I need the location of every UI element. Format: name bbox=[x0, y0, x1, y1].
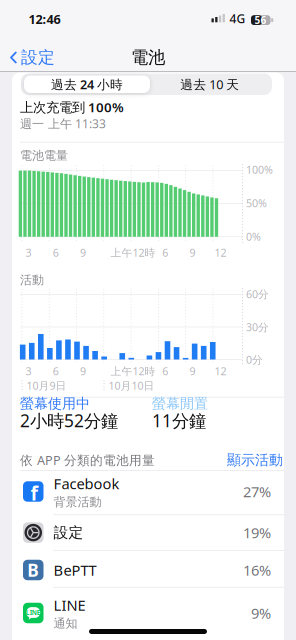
staticText: Facebook bbox=[53, 473, 119, 493]
staticText: 6 bbox=[53, 364, 59, 378]
staticText: 12 bbox=[214, 245, 226, 260]
button[interactable]: 過去 24 小時 bbox=[24, 75, 150, 93]
staticText: 12:46 bbox=[28, 10, 60, 28]
staticText: 56 bbox=[254, 13, 266, 27]
staticText: 螢幕閒置 bbox=[152, 395, 208, 412]
button[interactable]: 設定 bbox=[10, 43, 55, 71]
staticText: 9% bbox=[251, 603, 271, 623]
button[interactable]: 顯示活動 bbox=[225, 449, 285, 471]
staticText: 設定 bbox=[53, 523, 83, 542]
staticText: 9 bbox=[80, 245, 86, 260]
staticText: 12 bbox=[214, 364, 226, 378]
staticText: 0% bbox=[246, 229, 261, 244]
staticText: 3 bbox=[25, 245, 31, 260]
button[interactable]: LINE bbox=[12, 591, 284, 635]
staticText: 上午12時 bbox=[110, 245, 155, 260]
staticText: 螢幕使用中 bbox=[20, 395, 90, 412]
staticText: 上次充電到 100% bbox=[20, 98, 124, 116]
staticText: 顯示活動 bbox=[227, 451, 283, 469]
staticText: 過去 10 天 bbox=[180, 76, 239, 93]
staticText: 9 bbox=[189, 364, 195, 378]
staticText: 設定 bbox=[21, 47, 55, 68]
staticText: 3 bbox=[25, 364, 31, 378]
button[interactable]: f bbox=[12, 469, 284, 513]
staticText: 電池 bbox=[131, 47, 165, 68]
staticText: 0分 bbox=[246, 352, 263, 367]
staticText: 6 bbox=[162, 364, 168, 378]
staticText: 週一 上午 11:33 bbox=[20, 115, 106, 132]
staticText: 通知 bbox=[53, 616, 77, 631]
staticText: 27% bbox=[243, 481, 271, 501]
button[interactable]: 設定 bbox=[12, 515, 284, 551]
staticText: 依 APP 分類的電池用量 bbox=[20, 451, 155, 469]
staticText: B bbox=[27, 558, 39, 582]
staticText: 100% bbox=[246, 162, 273, 177]
staticText: f bbox=[31, 480, 38, 506]
button[interactable]: 過去 10 天 bbox=[150, 75, 270, 93]
staticText: 2小時52分鐘 bbox=[20, 409, 118, 432]
staticText: 9 bbox=[80, 364, 86, 378]
staticText: 電池電量 bbox=[20, 148, 68, 163]
button[interactable]: B bbox=[12, 552, 284, 588]
staticText: 活動 bbox=[20, 272, 44, 287]
staticText: 60分 bbox=[246, 287, 269, 301]
staticText: 11分鐘 bbox=[152, 409, 206, 432]
staticText: 30分 bbox=[246, 320, 269, 334]
staticText: 4G bbox=[229, 10, 245, 27]
staticText: LINE bbox=[26, 608, 41, 617]
staticText: 10月10日 bbox=[108, 378, 154, 393]
staticText: 6 bbox=[53, 245, 59, 260]
staticText: 上午12時 bbox=[110, 364, 155, 378]
staticText: 19% bbox=[243, 523, 271, 543]
staticText: 10月9日 bbox=[26, 378, 66, 393]
staticText: 過去 24 小時 bbox=[51, 76, 123, 93]
staticText: 背景活動 bbox=[53, 494, 101, 509]
staticText: 50% bbox=[246, 196, 267, 210]
staticText: BePTT bbox=[53, 560, 96, 580]
staticText: 6 bbox=[162, 245, 168, 260]
staticText: 9 bbox=[189, 245, 195, 260]
staticText: LINE bbox=[53, 595, 85, 615]
staticText: 16% bbox=[243, 560, 271, 580]
